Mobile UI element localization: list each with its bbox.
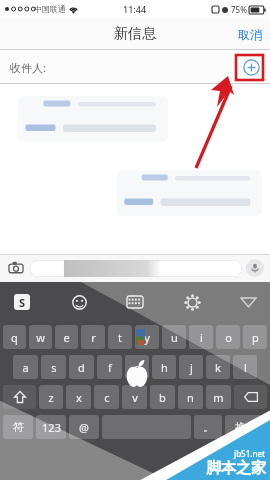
button[interactable]: p — [243, 325, 267, 349]
button[interactable]: Sogou input — [10, 290, 34, 314]
button[interactable]: y — [135, 325, 159, 349]
staticText: w — [36, 330, 45, 345]
staticText: 脚本之家 — [206, 459, 266, 478]
button[interactable]: @ — [69, 415, 99, 439]
staticText: b — [159, 390, 166, 405]
button[interactable]: m — [206, 385, 231, 409]
staticText: t — [118, 330, 122, 345]
button[interactable]: a — [13, 355, 38, 379]
button[interactable]: Delete — [234, 385, 267, 409]
staticText: 收件人: — [10, 60, 46, 75]
button[interactable]: r — [81, 325, 105, 349]
button[interactable]: b — [150, 385, 175, 409]
button[interactable]: n — [178, 385, 203, 409]
button[interactable]: o — [216, 325, 240, 349]
button[interactable]: t — [108, 325, 132, 349]
button[interactable] — [30, 260, 242, 277]
button[interactable]: Keyboard layout — [123, 290, 147, 314]
button[interactable]: c — [94, 385, 119, 409]
staticText: 中国联通 — [34, 4, 66, 14]
staticText: v — [132, 390, 138, 405]
staticText: s — [51, 360, 57, 375]
button[interactable]: Settings — [180, 290, 204, 314]
button[interactable]: i — [189, 325, 213, 349]
button[interactable]: k — [206, 355, 230, 379]
staticText: f — [108, 360, 112, 375]
staticText: o — [225, 330, 232, 345]
staticText: 75% — [231, 4, 247, 15]
button[interactable]: Hide keyboard — [236, 290, 260, 314]
button[interactable]: Camera — [6, 258, 26, 278]
button[interactable]: h — [152, 355, 176, 379]
staticText: S — [19, 295, 26, 310]
button[interactable]: u — [162, 325, 186, 349]
staticText: u — [171, 330, 178, 345]
staticText: 11:44 — [123, 3, 147, 15]
button[interactable]: 取消 — [230, 21, 270, 48]
staticText: n — [187, 390, 194, 405]
staticText: y — [144, 330, 150, 345]
staticText: d — [78, 360, 85, 375]
button[interactable]: q — [3, 325, 26, 349]
staticText: c — [104, 390, 110, 405]
staticText: 符 — [13, 420, 24, 434]
staticText: 换行 — [235, 420, 257, 434]
staticText: z — [48, 390, 54, 405]
button[interactable]: 换行 — [225, 415, 267, 439]
button[interactable]: 。 — [194, 415, 222, 439]
staticText: jb51.net — [234, 448, 266, 459]
button[interactable]: g — [125, 355, 149, 379]
staticText: m — [213, 390, 224, 405]
staticText: 新信息 — [114, 25, 156, 43]
staticText: i — [200, 330, 203, 345]
staticText: k — [215, 360, 221, 375]
button[interactable]: Voice message — [246, 259, 264, 277]
button[interactable]: Add contact — [241, 57, 261, 77]
staticText: q — [11, 330, 18, 345]
staticText: g — [134, 360, 141, 375]
staticText: l — [244, 360, 247, 375]
staticText: h — [161, 360, 168, 375]
staticText: j — [190, 360, 193, 375]
button[interactable]: w — [29, 325, 52, 349]
staticText: 取消 — [238, 27, 262, 42]
button[interactable]: j — [179, 355, 203, 379]
button[interactable]: f — [97, 355, 122, 379]
staticText: e — [63, 330, 70, 345]
button[interactable]: Shift — [3, 385, 36, 409]
staticText: 。 — [203, 420, 214, 434]
button[interactable]: z — [39, 385, 63, 409]
staticText: r — [91, 330, 96, 345]
button[interactable]: l — [233, 355, 257, 379]
staticText: x — [76, 390, 82, 405]
staticText: @ — [79, 420, 89, 435]
staticText: 123 — [42, 420, 61, 435]
button[interactable]: 123 — [36, 415, 66, 439]
button[interactable]: 符 — [3, 415, 33, 439]
staticText: a — [22, 360, 29, 375]
button[interactable]: x — [66, 385, 91, 409]
button[interactable]: v — [122, 385, 147, 409]
button[interactable]: e — [55, 325, 78, 349]
button[interactable]: d — [69, 355, 94, 379]
button[interactable]: s — [41, 355, 66, 379]
button[interactable]: Emoji — [67, 290, 91, 314]
staticText: p — [252, 330, 259, 345]
